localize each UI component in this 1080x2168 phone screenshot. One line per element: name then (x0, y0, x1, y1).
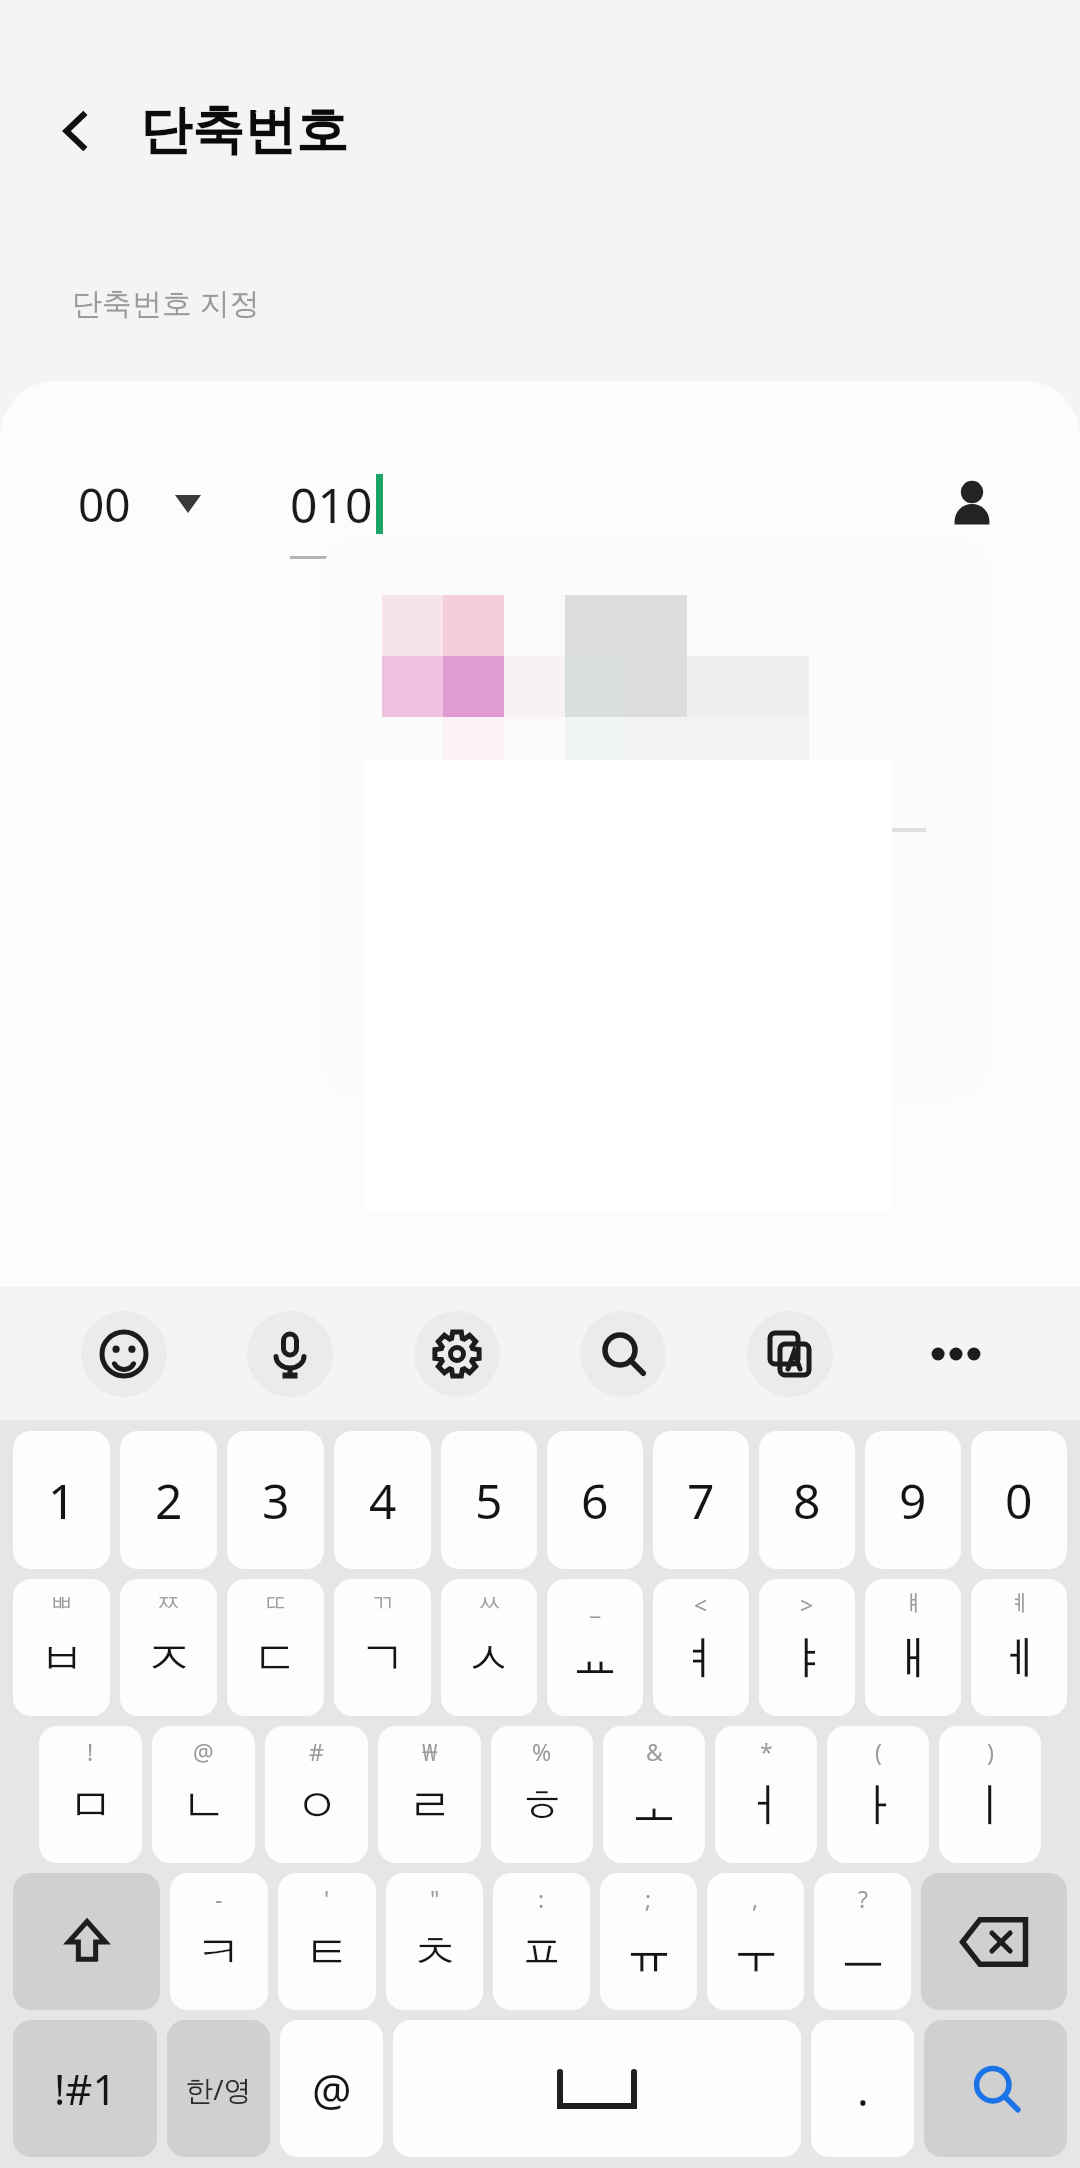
button[interactable]: , (707, 1873, 804, 2010)
button[interactable]: 6 (547, 1431, 643, 1569)
staticText: ; (645, 1883, 652, 1914)
staticText: 8 (793, 1468, 821, 1533)
button[interactable]: & (603, 1726, 705, 1863)
button[interactable]: 0 (971, 1431, 1067, 1569)
button[interactable]: Backspace (921, 1873, 1067, 2010)
button[interactable]: 7 (653, 1431, 749, 1569)
button[interactable]: ㅖ (971, 1579, 1067, 1716)
staticText: ( (875, 1736, 882, 1767)
staticText: ㅉ (157, 1589, 180, 1618)
staticText: ㅊ (412, 1924, 458, 1982)
staticText: ㅣ (967, 1777, 1013, 1835)
button[interactable]: ! (39, 1726, 142, 1863)
staticText: 단축번호 지정 (72, 282, 260, 323)
button[interactable]: Space (393, 2020, 801, 2157)
staticText: 2 (155, 1468, 183, 1533)
button[interactable]: ㅃ (13, 1579, 110, 1716)
staticText: : (538, 1883, 545, 1914)
button[interactable]: % (491, 1726, 593, 1863)
button[interactable]: ㄲ (334, 1579, 431, 1716)
button[interactable]: ㅒ (865, 1579, 961, 1716)
button[interactable]: . (811, 2020, 914, 2157)
button[interactable]: Emoji (81, 1311, 167, 1397)
staticText: 9 (899, 1468, 927, 1533)
button[interactable]: 2 (120, 1431, 217, 1569)
staticText: ㅅ (466, 1630, 512, 1688)
button[interactable]: : (493, 1873, 590, 2010)
staticText: & (646, 1736, 663, 1767)
button[interactable]: * (715, 1726, 817, 1863)
staticText: ? (858, 1883, 868, 1914)
staticText: ㅂ (39, 1630, 85, 1688)
staticText: ㅔ (996, 1630, 1042, 1688)
staticText: _ (590, 1589, 601, 1620)
staticText: # (309, 1736, 324, 1767)
button[interactable]: 4 (334, 1431, 431, 1569)
staticText: 6 (581, 1468, 609, 1533)
staticText: ㅠ (626, 1924, 672, 1982)
staticText: ㅋ (196, 1924, 242, 1982)
staticText: 00 (78, 473, 131, 536)
button[interactable]: Keyboard settings (414, 1311, 500, 1397)
button[interactable]: ' (278, 1873, 376, 2010)
button[interactable]: 00 (78, 454, 268, 554)
button[interactable]: More options (913, 1311, 999, 1397)
button[interactable]: @ (152, 1726, 255, 1863)
button[interactable]: Voice input (247, 1311, 333, 1397)
button[interactable]: ( (827, 1726, 929, 1863)
button[interactable]: # (265, 1726, 368, 1863)
staticText: ㅆ (478, 1589, 501, 1618)
staticText: !#1 (54, 2060, 117, 2117)
button[interactable]: ㄸ (227, 1579, 324, 1716)
staticText: ㄴ (181, 1777, 227, 1835)
staticText: 010 (290, 472, 373, 537)
staticText: ㅖ (1008, 1589, 1031, 1618)
button[interactable]: ) (939, 1726, 1041, 1863)
button[interactable]: 9 (865, 1431, 961, 1569)
button[interactable]: ; (600, 1873, 697, 2010)
staticText: < (694, 1589, 708, 1620)
staticText: 5 (475, 1468, 503, 1533)
button[interactable]: 5 (441, 1431, 537, 1569)
button[interactable]: Translate (747, 1311, 833, 1397)
button[interactable]: ₩ (378, 1726, 481, 1863)
staticText: 0 (1005, 1468, 1033, 1533)
button[interactable]: 1 (13, 1431, 110, 1569)
staticText: ㅜ (733, 1924, 779, 1982)
button[interactable]: > (759, 1579, 855, 1716)
button[interactable]: ? (814, 1873, 911, 2010)
staticText: ) (987, 1736, 994, 1767)
button[interactable]: Language (167, 2020, 270, 2157)
button[interactable]: Shift (13, 1873, 160, 2010)
staticText: ㅈ (146, 1630, 192, 1688)
button[interactable]: !#1 (13, 2020, 157, 2157)
button[interactable]: " (386, 1873, 483, 2010)
staticText: ㅇ (294, 1777, 340, 1835)
button[interactable]: @ (280, 2020, 383, 2157)
staticText: ₩ (422, 1736, 438, 1767)
staticText: ㅑ (784, 1630, 830, 1688)
staticText: ㅎ (519, 1777, 565, 1835)
button[interactable]: _ (547, 1579, 643, 1716)
button[interactable]: Select contact (924, 456, 1020, 552)
button[interactable]: Search (924, 2020, 1067, 2157)
staticText: 7 (687, 1468, 715, 1533)
staticText: ㅡ (840, 1924, 886, 1982)
staticText: ㄷ (253, 1630, 299, 1688)
staticText: - (215, 1883, 223, 1914)
button[interactable]: ㅆ (441, 1579, 537, 1716)
button[interactable]: Back (40, 95, 112, 167)
button[interactable]: < (653, 1579, 749, 1716)
button[interactable]: 3 (227, 1431, 324, 1569)
staticText: 한/영 (185, 2070, 252, 2108)
staticText: 3 (262, 1468, 290, 1533)
button[interactable]: - (170, 1873, 268, 2010)
staticText: ㄱ (360, 1630, 406, 1688)
staticText: ㄸ (264, 1589, 287, 1618)
button[interactable]: 010 (290, 449, 900, 559)
staticText: ㅒ (902, 1589, 925, 1618)
button[interactable]: Search (580, 1311, 666, 1397)
button[interactable]: 8 (759, 1431, 855, 1569)
staticText: > (800, 1589, 814, 1620)
button[interactable]: ㅉ (120, 1579, 217, 1716)
